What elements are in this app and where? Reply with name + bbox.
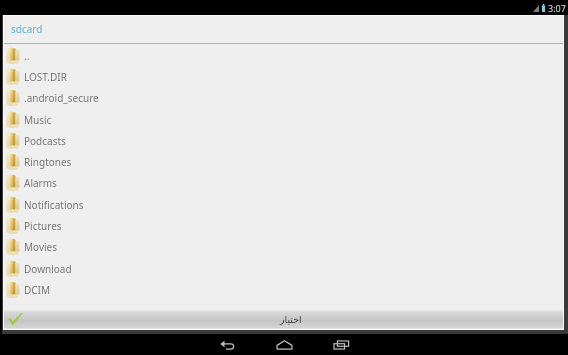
- staticText: Notifications: [24, 198, 84, 212]
- staticText: Alarms: [24, 176, 57, 190]
- button[interactable]: Back: [199, 334, 256, 355]
- button[interactable]: DCIM: [4, 279, 563, 300]
- staticText: اختيار: [280, 314, 302, 325]
- button[interactable]: Download: [4, 258, 563, 279]
- staticText: Movies: [24, 240, 58, 254]
- button[interactable]: Recents: [313, 334, 370, 355]
- staticText: 3:07: [548, 2, 566, 14]
- staticText: Pictures: [24, 219, 62, 233]
- staticText: LOST.DIR: [24, 70, 67, 84]
- button[interactable]: Pictures: [4, 215, 563, 236]
- staticText: Ringtones: [24, 155, 72, 169]
- button[interactable]: ..: [4, 45, 563, 66]
- staticText: DCIM: [24, 283, 51, 297]
- staticText: Podcasts: [24, 134, 66, 148]
- button[interactable]: اختيار: [4, 310, 563, 329]
- button[interactable]: LOST.DIR: [4, 66, 563, 87]
- staticText: sdcard: [11, 22, 43, 36]
- button[interactable]: .android_secure: [4, 87, 563, 108]
- button[interactable]: Podcasts: [4, 130, 563, 151]
- button[interactable]: Home: [256, 334, 313, 355]
- button[interactable]: Movies: [4, 236, 563, 257]
- button[interactable]: Notifications: [4, 194, 563, 215]
- staticText: .android_secure: [24, 91, 99, 105]
- button[interactable]: Music: [4, 109, 563, 130]
- button[interactable]: Alarms: [4, 172, 563, 193]
- staticText: ..: [24, 49, 30, 63]
- button[interactable]: Ringtones: [4, 151, 563, 172]
- staticText: Download: [24, 262, 72, 276]
- staticText: Music: [24, 113, 52, 127]
